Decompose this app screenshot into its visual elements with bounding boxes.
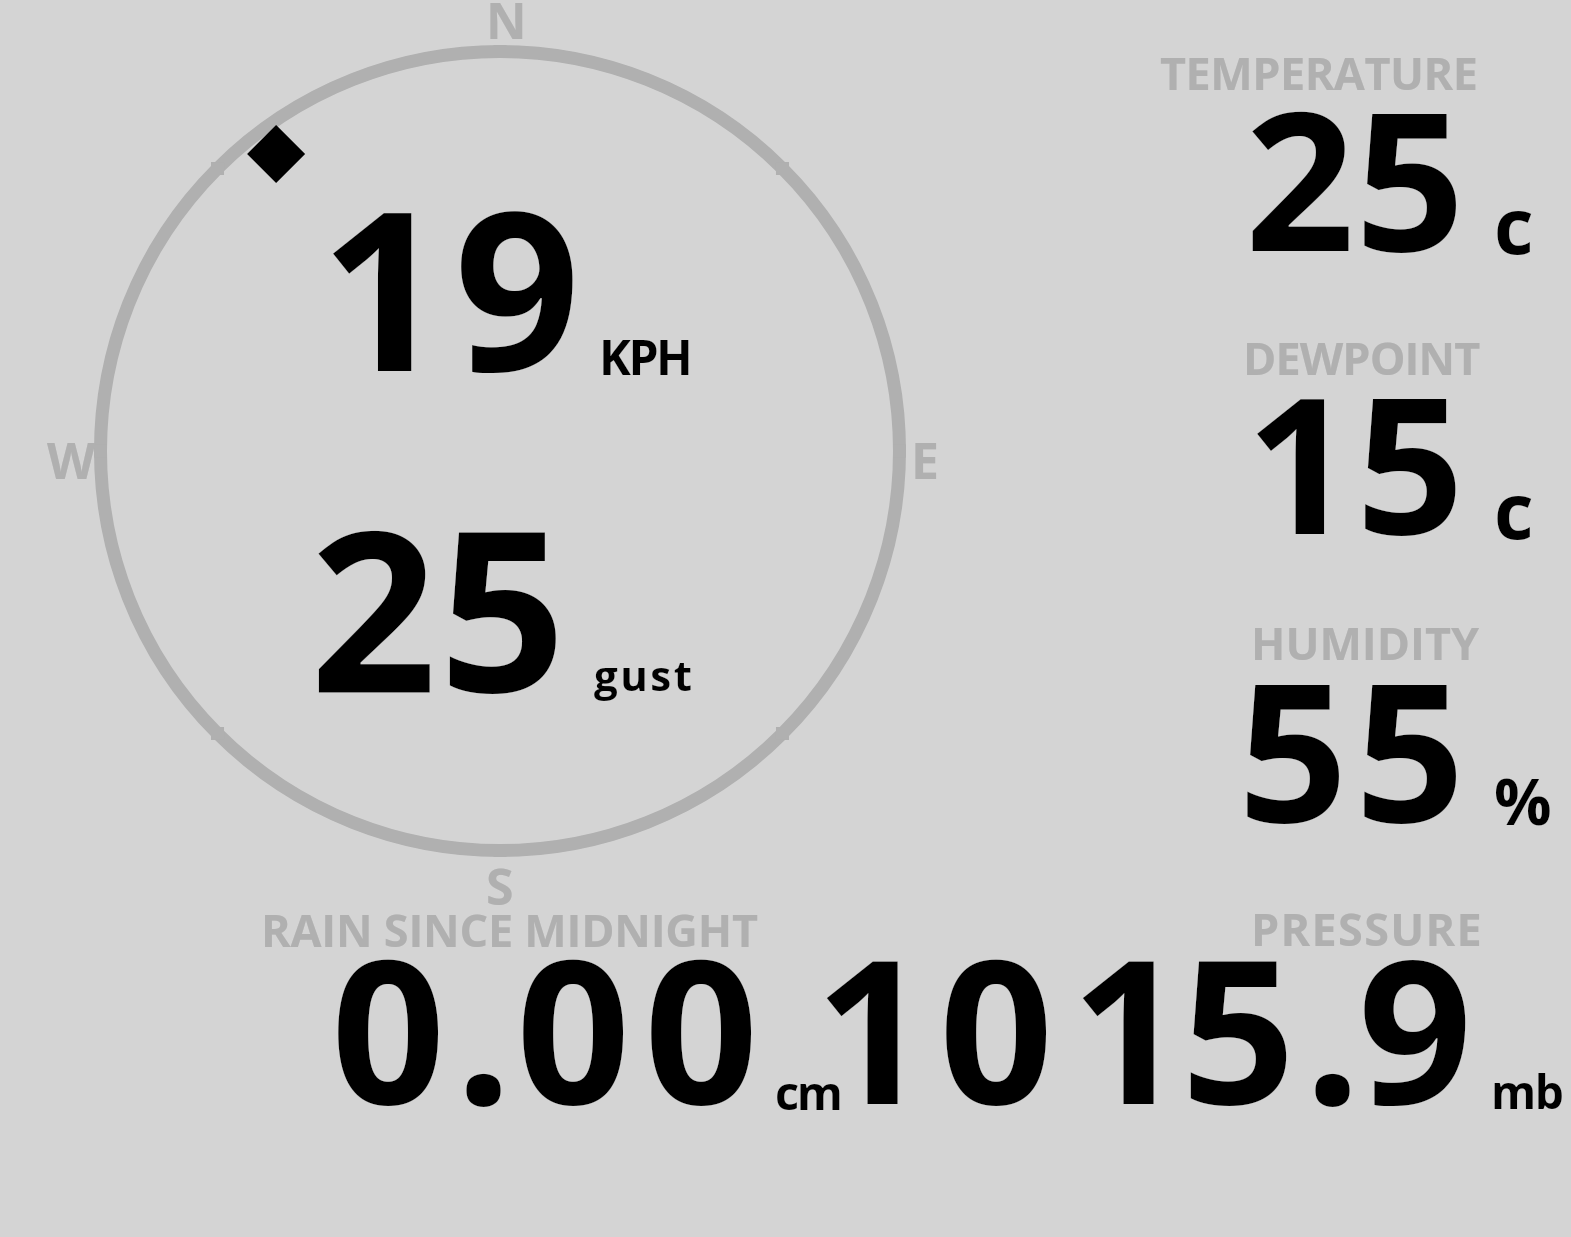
staticText: mb xyxy=(1491,1060,1563,1123)
staticText: HUMIDITY xyxy=(1251,612,1480,673)
staticText: DEWPOINT xyxy=(1243,327,1480,388)
staticText: 0 xyxy=(939,890,1054,1162)
staticText: 5 xyxy=(1355,617,1465,878)
staticText: gust xyxy=(594,646,695,703)
staticText: 0 xyxy=(644,890,759,1162)
staticText: c xyxy=(1494,172,1534,277)
staticText: . xyxy=(1304,890,1362,1162)
staticText: 5 xyxy=(1238,617,1348,878)
staticText: . xyxy=(455,890,513,1162)
staticText: 0 xyxy=(331,890,446,1162)
staticText: 1 xyxy=(1246,332,1355,589)
button[interactable]: Dewpoint 15 C xyxy=(1100,325,1560,565)
staticText: 2 xyxy=(1245,46,1355,307)
staticText: S xyxy=(486,852,514,920)
button[interactable]: Temperature 25 C xyxy=(1100,40,1560,280)
staticText: 9 xyxy=(1358,890,1473,1162)
staticText: 5 xyxy=(439,455,566,757)
staticText: 2 xyxy=(310,455,437,757)
staticText: 5 xyxy=(1181,890,1296,1162)
staticText: 0 xyxy=(516,890,631,1162)
staticText: cm xyxy=(775,1060,841,1124)
staticText: W xyxy=(47,426,96,494)
staticText: N xyxy=(486,0,527,54)
staticText: 1 xyxy=(815,890,930,1162)
staticText: TEMPERATURE xyxy=(1160,42,1478,103)
staticText: 9 xyxy=(454,135,581,436)
staticText: 5 xyxy=(1355,46,1465,307)
staticText: RAIN SINCE MIDNIGHT xyxy=(261,899,758,960)
button[interactable]: Humidity 55 percent xyxy=(1100,610,1560,850)
staticText: KPH xyxy=(599,324,691,389)
staticText: PRESSURE xyxy=(1251,898,1484,959)
staticText: 1 xyxy=(1071,890,1186,1162)
staticText: 1 xyxy=(320,135,447,436)
staticText: E xyxy=(911,426,940,494)
button[interactable]: Wind direction compass, 19 KPH gusting 2… xyxy=(40,0,960,895)
staticText: c xyxy=(1494,457,1534,562)
staticText: 5 xyxy=(1356,332,1465,589)
staticText: % xyxy=(1494,757,1552,844)
button[interactable]: Rain since midnight 0.00 cm xyxy=(250,905,850,1120)
button[interactable]: Pressure 1015.9 mb xyxy=(850,905,1565,1120)
